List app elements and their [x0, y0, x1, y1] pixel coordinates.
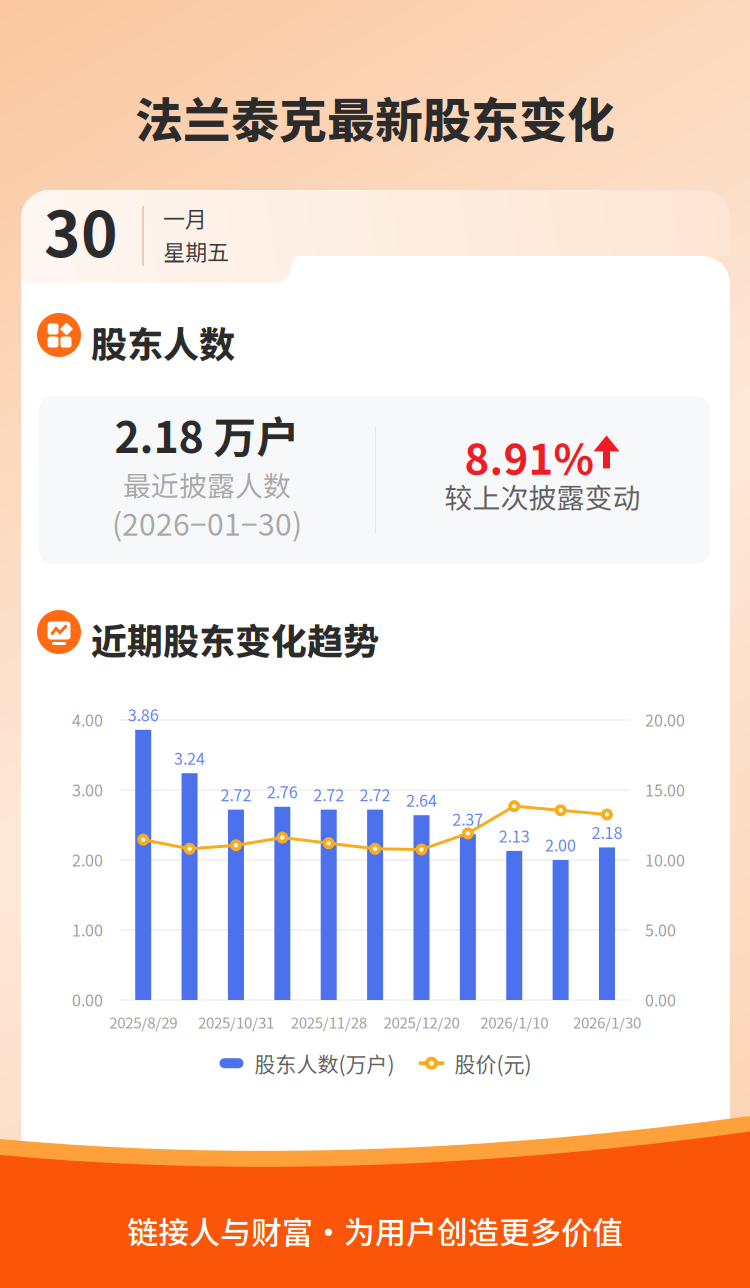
staticText: 一月	[163, 202, 207, 234]
staticText: 较上次披露变动	[444, 476, 640, 516]
staticText: 2.00	[545, 833, 576, 856]
staticText: 2025/10/31	[198, 1011, 274, 1033]
staticText: 法兰泰克最新股东变化	[135, 82, 615, 152]
staticText: 2.13	[499, 824, 530, 847]
staticText: 3.00	[72, 778, 103, 801]
staticText: 20.00	[645, 708, 685, 731]
staticText: 2.64	[406, 788, 437, 811]
staticText: 2.72	[313, 783, 344, 806]
staticText: 2.72	[360, 783, 391, 806]
staticText: 3.24	[174, 746, 205, 769]
staticText: 2.37	[452, 807, 483, 830]
staticText: 2.72	[220, 783, 251, 806]
staticText: 星期五	[163, 235, 229, 267]
staticText: 3.86	[128, 703, 159, 726]
staticText: 2.18	[591, 820, 622, 844]
staticText: 股价(元)	[454, 1048, 531, 1078]
staticText: 2025/11/28	[291, 1011, 367, 1033]
staticText: (2026−01−30)	[112, 501, 302, 544]
staticText: 2.00	[72, 848, 103, 871]
staticText: 0.00	[645, 988, 676, 1011]
staticText: 2025/8/29	[109, 1011, 177, 1033]
staticText: 2.18 万户	[114, 403, 299, 465]
staticText: 股东人数(万户)	[254, 1048, 394, 1078]
staticText: 10.00	[645, 848, 685, 871]
staticText: 1.00	[72, 918, 103, 941]
staticText: 5.00	[645, 918, 676, 941]
staticText: 8.91%	[464, 426, 593, 487]
staticText: 4.00	[72, 708, 103, 731]
staticText: 30	[44, 185, 118, 275]
staticText: 2026/1/30	[573, 1011, 641, 1033]
staticText: 15.00	[645, 778, 685, 801]
staticText: 股东人数	[91, 316, 235, 368]
staticText: 2.76	[267, 780, 298, 803]
staticText: 链接人与财富·为用户创造更多价值	[127, 1208, 623, 1253]
staticText: 0.00	[72, 988, 103, 1011]
staticText: 最近披露人数	[123, 464, 291, 504]
staticText: 近期股东变化趋势	[91, 613, 379, 665]
staticText: 2026/1/10	[480, 1011, 548, 1033]
staticText: 2025/12/20	[383, 1011, 459, 1033]
